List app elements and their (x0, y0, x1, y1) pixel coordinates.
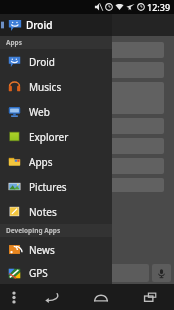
staticText: Pictures (29, 180, 67, 194)
button[interactable]: Notes (0, 199, 112, 224)
staticText: Notes (29, 205, 57, 219)
button[interactable]: han? (4, 42, 164, 58)
button[interactable] (4, 178, 164, 192)
staticText: han? (6, 45, 22, 55)
staticText: minute, r in one (6, 90, 32, 107)
staticText: Explorer (29, 130, 69, 144)
staticText: Apps (29, 155, 53, 169)
staticText: Developing Apps (6, 226, 61, 235)
button[interactable]: GPS (0, 262, 112, 284)
button[interactable]: minute, r in one (4, 82, 164, 114)
button[interactable] (4, 138, 164, 154)
staticText: Apps (6, 38, 22, 47)
button[interactable]: Apps (0, 149, 112, 174)
button[interactable]: Recents (125, 284, 174, 310)
staticText: GPS (29, 266, 48, 280)
button[interactable]: News (0, 237, 112, 262)
button[interactable]: Menu (0, 284, 28, 310)
staticText: 12:39 (147, 1, 171, 13)
staticText: Droid (29, 55, 56, 69)
staticText: Web (29, 105, 50, 119)
button[interactable]: Pictures (0, 174, 112, 199)
button[interactable]: Home (76, 284, 125, 310)
button[interactable]: Droid (1, 14, 112, 36)
button[interactable]: Musics (0, 74, 112, 99)
button[interactable]: Droid (0, 49, 112, 74)
button[interactable] (3, 264, 149, 282)
staticText: News (29, 243, 55, 257)
button[interactable]: Voice input (152, 264, 171, 282)
button[interactable]: Back (28, 284, 76, 310)
staticText: Musics (29, 80, 62, 94)
button[interactable]: Explorer (0, 124, 112, 149)
button[interactable]: Web (0, 99, 112, 124)
button[interactable] (4, 158, 164, 174)
staticText: Droid (26, 18, 53, 32)
button[interactable] (4, 62, 164, 78)
button[interactable] (4, 118, 164, 134)
